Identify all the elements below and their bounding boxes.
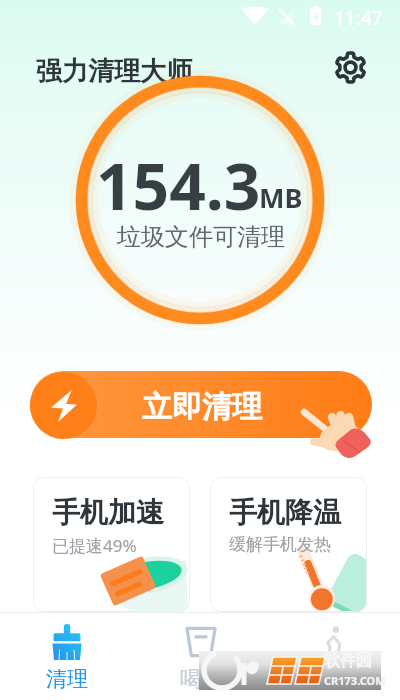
staticText: 立即清理 [142,388,262,426]
staticText: 缓解手机发热 [229,534,331,555]
button[interactable]: 手机加速 [33,477,190,612]
button[interactable]: Settings [330,47,370,87]
staticText: 垃圾文件可清理 [117,222,285,252]
button[interactable]: 立即清理 [30,371,372,438]
button[interactable]: 运动 [267,613,400,700]
button[interactable]: 喝水 [134,613,267,700]
staticText: 喝水 [180,666,222,692]
button[interactable]: 清理 [0,613,134,700]
staticText: 清理 [46,666,88,692]
staticText: 手机降温 [229,495,341,530]
staticText: 软件园 [324,651,372,671]
staticText: 手机加速 [52,495,164,530]
staticText: CR173.COM [324,673,386,688]
button[interactable]: 手机降温 [210,477,367,612]
staticText: MB [259,179,303,216]
staticText: 强力清理大师 [36,55,192,88]
staticText: 已提速49% [52,534,137,557]
staticText: 运动 [313,666,355,692]
staticText: 154.3 [96,142,261,229]
staticText: 11:47 [334,5,383,31]
